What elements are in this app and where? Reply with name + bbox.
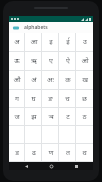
button[interactable]: ख bbox=[76, 71, 93, 89]
staticText: थ bbox=[82, 148, 87, 158]
button[interactable]: अः bbox=[42, 71, 59, 89]
button[interactable]: ट bbox=[59, 108, 76, 125]
staticText: ङ bbox=[48, 94, 53, 104]
staticText: ऋ bbox=[31, 56, 37, 66]
button[interactable]: क bbox=[59, 71, 76, 89]
staticText: ञ bbox=[48, 112, 54, 122]
button[interactable]: अ bbox=[9, 33, 25, 51]
button[interactable]: ज bbox=[9, 108, 25, 125]
button[interactable]: च bbox=[59, 90, 76, 107]
button[interactable]: ओ bbox=[76, 52, 93, 70]
staticText: ण bbox=[48, 148, 54, 158]
button[interactable]: ग bbox=[9, 90, 25, 107]
staticText: च bbox=[65, 94, 70, 104]
button[interactable]: ड bbox=[9, 144, 25, 161]
button[interactable]: Home bbox=[43, 162, 59, 170]
button[interactable] bbox=[9, 126, 25, 143]
staticText: अः bbox=[47, 75, 54, 85]
button[interactable]: Recent apps bbox=[68, 162, 84, 170]
staticText: झ bbox=[31, 112, 37, 122]
button[interactable] bbox=[59, 126, 76, 143]
button[interactable]: ऊ bbox=[9, 52, 25, 70]
button[interactable]: ए bbox=[42, 52, 59, 70]
button[interactable]: ऋ bbox=[25, 52, 42, 70]
staticText: ग bbox=[15, 94, 19, 104]
staticText: अ bbox=[14, 37, 20, 47]
staticText: आ bbox=[30, 37, 38, 47]
staticText: ड bbox=[15, 148, 19, 158]
button[interactable]: ई bbox=[59, 33, 76, 51]
staticText: ए bbox=[49, 56, 53, 66]
staticText: इ bbox=[49, 37, 53, 47]
staticText: घ bbox=[31, 94, 36, 104]
button[interactable]: अं bbox=[25, 71, 42, 89]
staticText: ओ bbox=[81, 56, 89, 66]
staticText: ढ bbox=[32, 148, 36, 158]
button[interactable]: ङ bbox=[42, 90, 59, 107]
staticText: औ bbox=[13, 75, 21, 85]
button[interactable] bbox=[25, 126, 42, 143]
staticText: ज bbox=[14, 112, 20, 122]
staticText: ऐ bbox=[66, 56, 70, 66]
button[interactable]: ण bbox=[42, 144, 59, 161]
other: App icon bbox=[13, 26, 19, 30]
button[interactable]: थ bbox=[76, 144, 93, 161]
button[interactable]: घ bbox=[25, 90, 42, 107]
button[interactable]: झ bbox=[25, 108, 42, 125]
staticText: छ bbox=[82, 94, 87, 104]
staticText: alphabets bbox=[24, 24, 48, 31]
button[interactable]: छ bbox=[76, 90, 93, 107]
button[interactable]: App icon bbox=[9, 22, 93, 33]
button[interactable]: आ bbox=[25, 33, 42, 51]
staticText: ख bbox=[82, 75, 88, 85]
button[interactable]: ठ bbox=[76, 108, 93, 125]
staticText: ठ bbox=[82, 112, 87, 122]
staticText: त bbox=[66, 148, 70, 158]
button[interactable]: ढ bbox=[25, 144, 42, 161]
button[interactable]: उ bbox=[76, 33, 93, 51]
staticText: क bbox=[65, 75, 71, 85]
staticText: अं bbox=[31, 75, 37, 85]
button[interactable]: ऐ bbox=[59, 52, 76, 70]
staticText: ट bbox=[66, 112, 70, 122]
button[interactable]: Back bbox=[18, 162, 34, 170]
staticText: ऊ bbox=[14, 56, 20, 66]
button[interactable]: ञ bbox=[42, 108, 59, 125]
button[interactable]: औ bbox=[9, 71, 25, 89]
button[interactable] bbox=[42, 126, 59, 143]
button[interactable]: त bbox=[59, 144, 76, 161]
staticText: ई bbox=[66, 37, 70, 47]
button[interactable]: इ bbox=[42, 33, 59, 51]
staticText: उ bbox=[83, 37, 87, 47]
